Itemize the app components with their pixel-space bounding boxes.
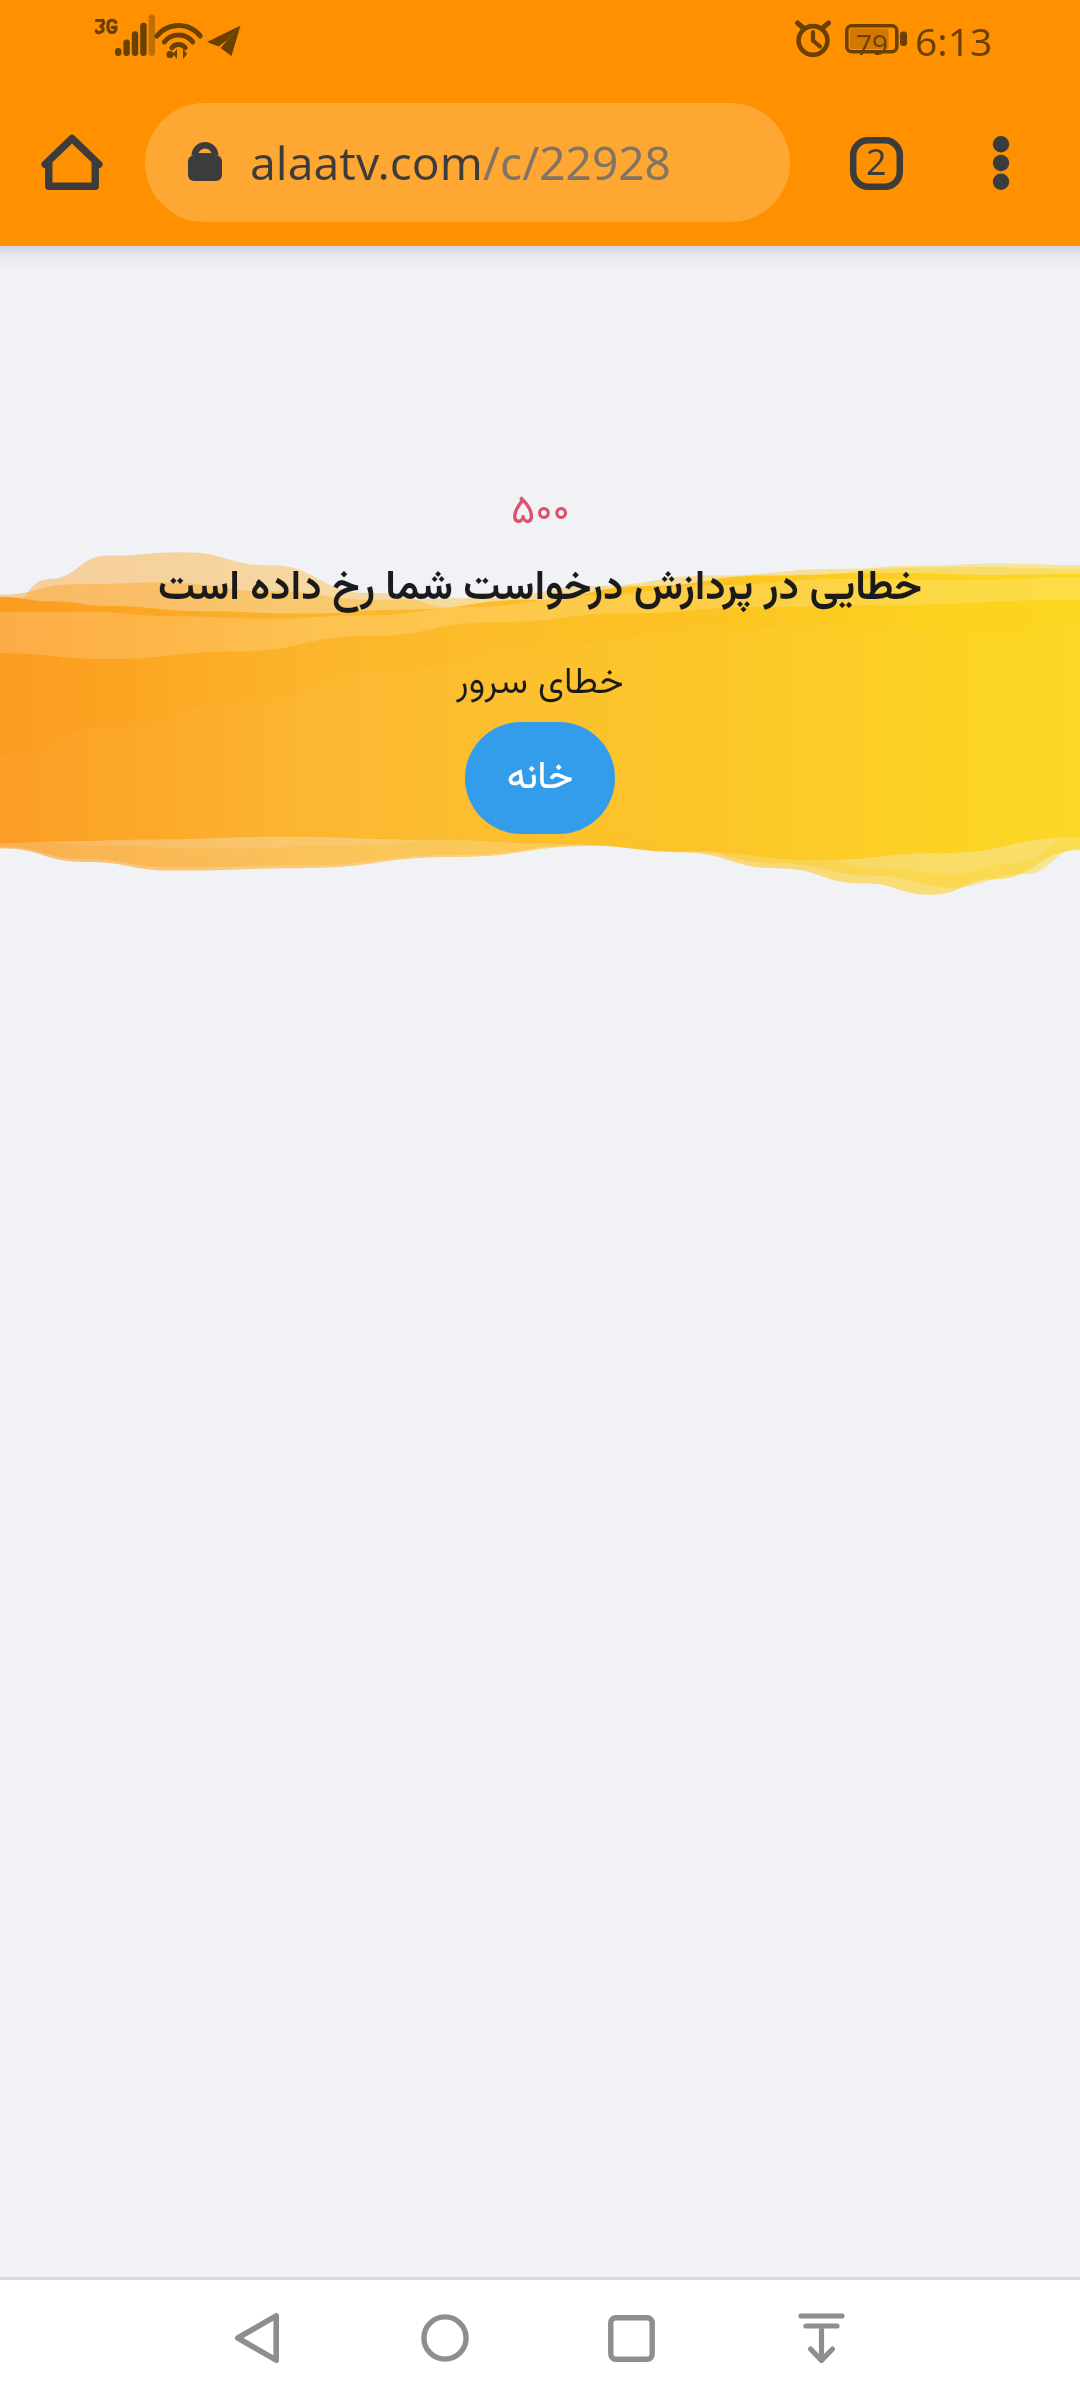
button[interactable]: Home	[18, 101, 126, 225]
button[interactable]: خانه	[465, 722, 615, 834]
button[interactable]: Home	[365, 2279, 525, 2397]
staticText: خطای سرور	[456, 655, 624, 713]
button[interactable]: Tabs	[820, 110, 932, 216]
button[interactable]: alaatv.com	[145, 103, 790, 222]
staticText: 79	[856, 25, 889, 63]
button[interactable]: Recent apps	[551, 2279, 711, 2397]
staticText: /c/22928	[483, 131, 671, 194]
staticText: خطایی در پردازش درخواست شما رخ داده است	[158, 557, 922, 621]
button[interactable]: Back	[177, 2279, 337, 2397]
staticText: 6:13	[915, 14, 993, 67]
staticText: ۵۰۰	[511, 481, 570, 545]
button[interactable]: Hide navigation bar	[741, 2279, 901, 2397]
staticText: خانه	[507, 749, 573, 808]
staticText: 2	[866, 137, 887, 186]
button[interactable]: More options	[948, 108, 1054, 218]
staticText: alaatv.com	[250, 131, 483, 194]
